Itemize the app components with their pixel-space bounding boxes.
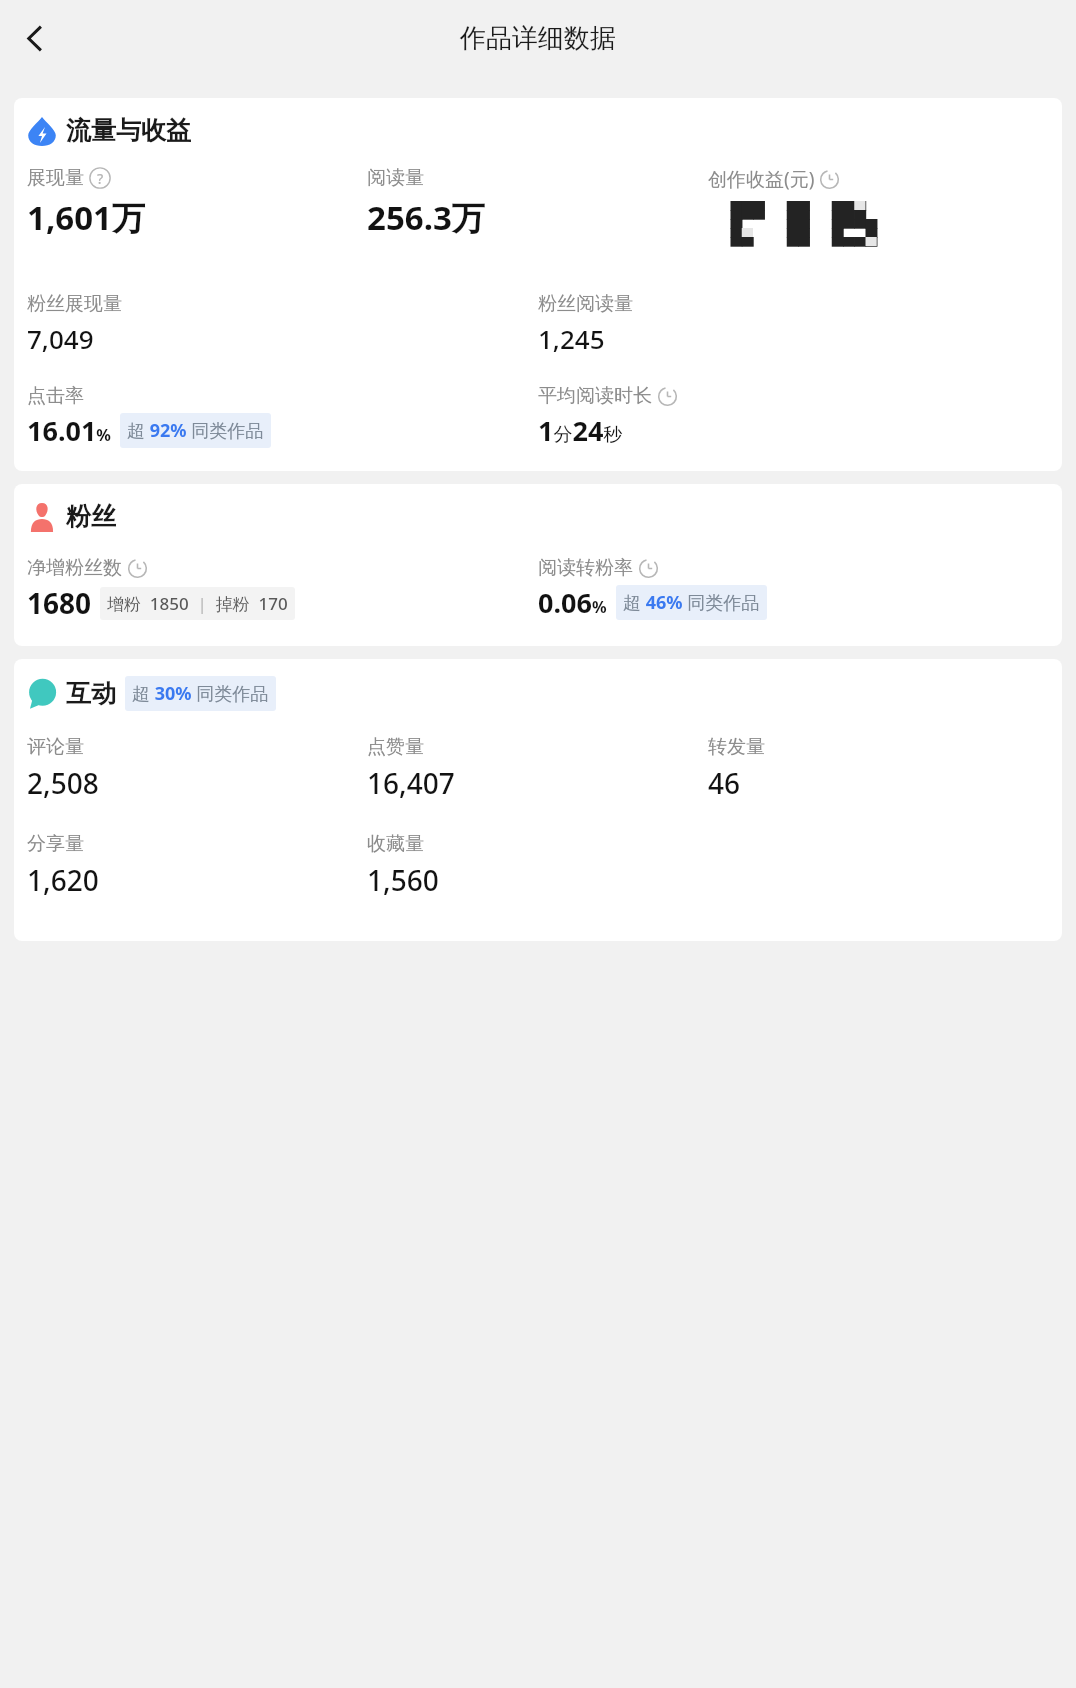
staticText: 256.3万: [367, 195, 485, 240]
staticText: 作品详细数据: [460, 22, 616, 55]
staticText: 46: [708, 764, 741, 802]
staticText: 展现量: [27, 166, 84, 190]
staticText: 分享量: [27, 832, 84, 856]
staticText: 创作收益(元): [708, 166, 815, 192]
staticText: 1680: [27, 584, 92, 622]
other: Pending update: [657, 386, 678, 407]
other: Pending update: [638, 558, 659, 579]
staticText: 点赞量: [367, 735, 424, 759]
staticText: 阅读量: [367, 166, 424, 190]
staticText: 超 46% 同类作品: [623, 590, 760, 615]
staticText: 增粉 1850 | 掉粉 170: [107, 592, 288, 615]
staticText: 净增粉丝数: [27, 556, 122, 580]
staticText: 超 30% 同类作品: [132, 681, 269, 706]
staticText: 阅读转粉率: [538, 556, 633, 580]
staticText: 7,049: [27, 321, 94, 356]
staticText: 互动: [66, 678, 116, 709]
button[interactable]: 超 92% 同类作品: [120, 413, 271, 448]
button[interactable]: 超 30% 同类作品: [125, 676, 276, 711]
button[interactable]: Help: [89, 167, 111, 189]
other: Pending update: [819, 169, 840, 190]
staticText: 超 92% 同类作品: [127, 418, 264, 443]
staticText: 0.06%: [538, 584, 607, 621]
staticText: 粉丝: [66, 501, 116, 532]
staticText: 点击率: [27, 384, 84, 408]
staticText: 1,601万: [27, 195, 145, 240]
staticText: 平均阅读时长: [538, 384, 652, 408]
staticText: 16.01%: [27, 412, 111, 449]
staticText: 1分24秒: [538, 412, 623, 449]
staticText: 收藏量: [367, 832, 424, 856]
button[interactable]: Back: [8, 11, 62, 65]
staticText: 16,407: [367, 764, 455, 802]
staticText: 1,560: [367, 861, 439, 899]
staticText: 流量与收益: [66, 115, 191, 146]
other: Pending update: [127, 558, 148, 579]
staticText: 评论量: [27, 735, 84, 759]
staticText: ?: [97, 169, 104, 188]
staticText: 1,620: [27, 861, 99, 899]
staticText: 转发量: [708, 735, 765, 759]
staticText: 粉丝展现量: [27, 292, 122, 316]
staticText: 2,508: [27, 764, 99, 802]
button[interactable]: 超 46% 同类作品: [616, 585, 767, 620]
other: Earnings hidden: [708, 201, 888, 246]
staticText: 1,245: [538, 321, 605, 356]
staticText: 粉丝阅读量: [538, 292, 633, 316]
